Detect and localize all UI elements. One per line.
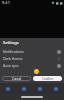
staticText: Dark theme xyxy=(3,56,23,61)
staticText: Notifications xyxy=(3,49,24,54)
button[interactable]: Confirm xyxy=(33,76,62,81)
staticText: Auto sync xyxy=(3,63,19,68)
button[interactable]: Notifications xyxy=(3,48,61,55)
button[interactable]: Auto sync xyxy=(3,62,61,69)
staticText: 9:41 xyxy=(2,0,10,5)
button[interactable]: Navigate xyxy=(16,83,32,95)
staticText: Cancel xyxy=(12,77,22,81)
staticText: Confirm xyxy=(42,77,54,81)
button[interactable]: Navigate xyxy=(0,83,16,95)
button[interactable]: Dark theme xyxy=(3,55,61,62)
staticText: Settings xyxy=(3,40,19,45)
button[interactable]: Cancel xyxy=(2,76,31,81)
button[interactable]: Navigate xyxy=(48,83,64,95)
button[interactable]: Highlight xyxy=(34,69,39,74)
button[interactable]: Navigate xyxy=(32,83,48,95)
